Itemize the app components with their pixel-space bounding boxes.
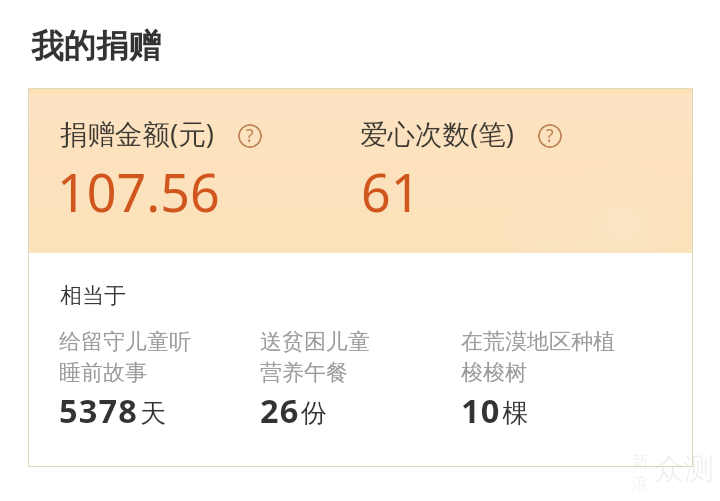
staticText: 61 bbox=[361, 156, 421, 227]
staticText: 捐赠金额(元) bbox=[60, 115, 214, 153]
staticText: 相当于 bbox=[60, 282, 126, 310]
staticText: 份 bbox=[301, 397, 327, 430]
staticText: 众测 bbox=[654, 450, 714, 488]
staticText: ? bbox=[246, 124, 254, 147]
staticText: 给留守儿童听 bbox=[59, 328, 191, 356]
button[interactable]: 捐赠金额(元) bbox=[238, 124, 262, 148]
staticText: 107.56 bbox=[57, 156, 220, 227]
button[interactable]: 爱心次数(笔) bbox=[538, 124, 562, 148]
staticText: 26 bbox=[260, 388, 300, 432]
staticText: 梭梭树 bbox=[461, 359, 527, 387]
staticText: ? bbox=[546, 124, 554, 147]
staticText: 睡前故事 bbox=[59, 359, 147, 387]
staticText: 在荒漠地区种植 bbox=[461, 328, 615, 356]
staticText: 天 bbox=[140, 397, 166, 430]
staticText: 5378 bbox=[59, 388, 139, 432]
staticText: 棵 bbox=[502, 397, 528, 430]
staticText: 送贫困儿童 bbox=[260, 328, 370, 356]
staticText: 爱心次数(笔) bbox=[360, 115, 514, 153]
staticText: 10 bbox=[461, 388, 501, 432]
staticText: 我的捐赠 bbox=[31, 26, 161, 67]
staticText: 营养午餐 bbox=[260, 359, 348, 387]
staticText: 新 浪 bbox=[632, 452, 648, 494]
